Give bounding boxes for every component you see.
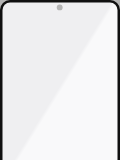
- button[interactable]: Phone preview: [0, 0, 120, 160]
